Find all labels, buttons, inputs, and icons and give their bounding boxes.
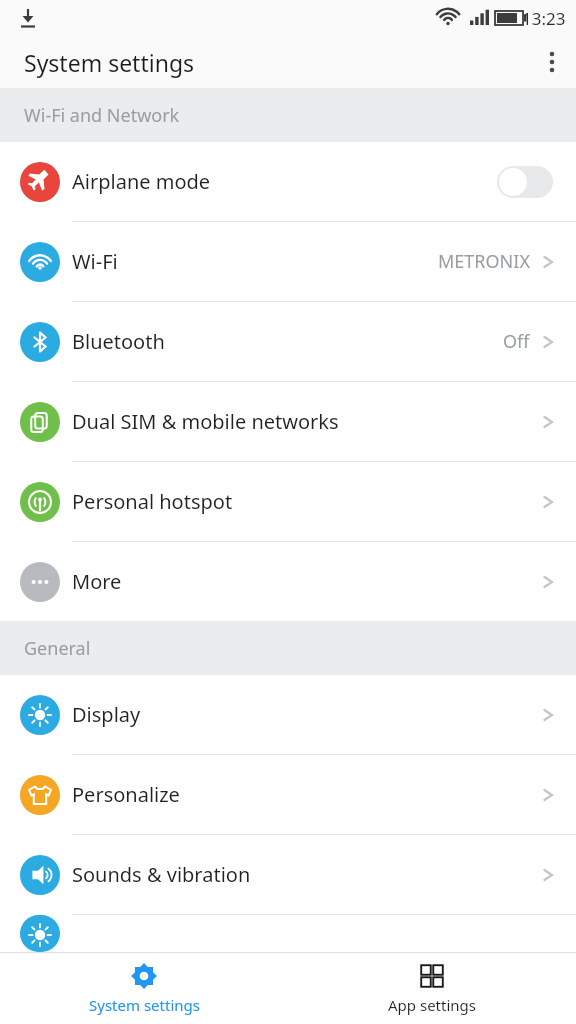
staticText: System settings: [89, 995, 200, 1015]
staticText: Wi-Fi and Network: [24, 103, 180, 128]
button[interactable]: Airplane mode toggle: [497, 166, 553, 198]
button[interactable]: Dual SIM & mobile networks: [0, 382, 576, 462]
button[interactable]: Personalize: [0, 755, 576, 835]
button[interactable]: Wi-Fi: [0, 222, 576, 302]
staticText: Bluetooth: [72, 328, 503, 355]
button[interactable]: More options: [528, 38, 576, 86]
staticText: Personalize: [72, 781, 538, 808]
staticText: Wi-Fi: [72, 248, 438, 275]
staticText: METRONIX: [438, 249, 530, 274]
button[interactable]: App settings: [288, 953, 576, 1024]
staticText: Sounds & vibration: [72, 861, 538, 888]
staticText: Off: [503, 329, 530, 354]
button[interactable]: Display: [0, 675, 576, 755]
button[interactable]: [0, 915, 576, 952]
button[interactable]: System settings: [0, 953, 288, 1024]
staticText: 13:23: [522, 7, 566, 30]
button[interactable]: Sounds & vibration: [0, 835, 576, 915]
staticText: Personal hotspot: [72, 488, 538, 515]
staticText: Airplane mode: [72, 168, 497, 195]
button[interactable]: Bluetooth: [0, 302, 576, 382]
staticText: App settings: [388, 995, 476, 1015]
button[interactable]: Personal hotspot: [0, 462, 576, 542]
button[interactable]: Airplane mode: [0, 142, 576, 222]
staticText: System settings: [24, 47, 195, 78]
staticText: Display: [72, 701, 538, 728]
staticText: General: [24, 636, 91, 661]
staticText: More: [72, 568, 538, 595]
button[interactable]: More: [0, 542, 576, 621]
staticText: Dual SIM & mobile networks: [72, 408, 538, 435]
